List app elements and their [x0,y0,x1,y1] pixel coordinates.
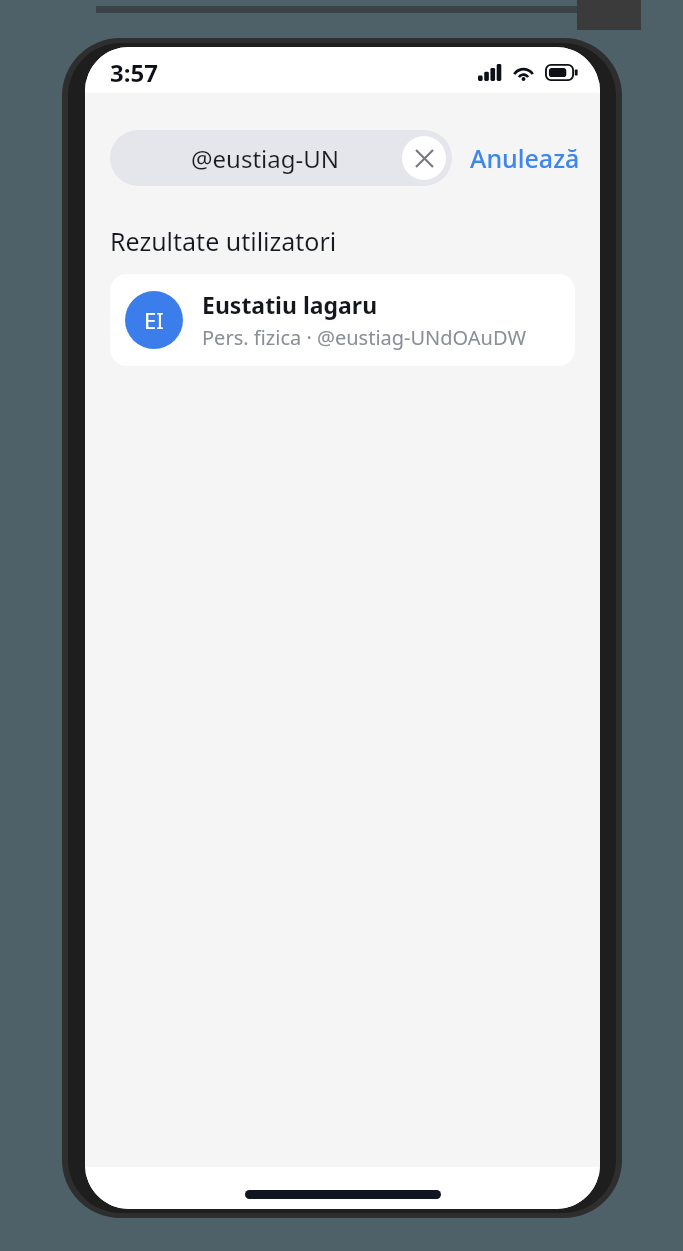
button[interactable]: Clear search [402,136,446,180]
staticText: 3:57 [110,56,158,89]
staticText: Eustatiu lagaru [202,289,378,320]
staticText: Pers. fizica · @eustiag-UNdOAuDW [202,324,526,351]
button[interactable]: @eustiag-UN [110,130,452,186]
staticText: Rezultate utilizatori [110,224,337,258]
button[interactable]: Anulează [468,135,582,181]
button[interactable]: EI [110,274,575,366]
staticText: EI [144,305,164,335]
staticText: @eustiag-UN [191,142,340,175]
staticText: Anulează [470,141,580,175]
